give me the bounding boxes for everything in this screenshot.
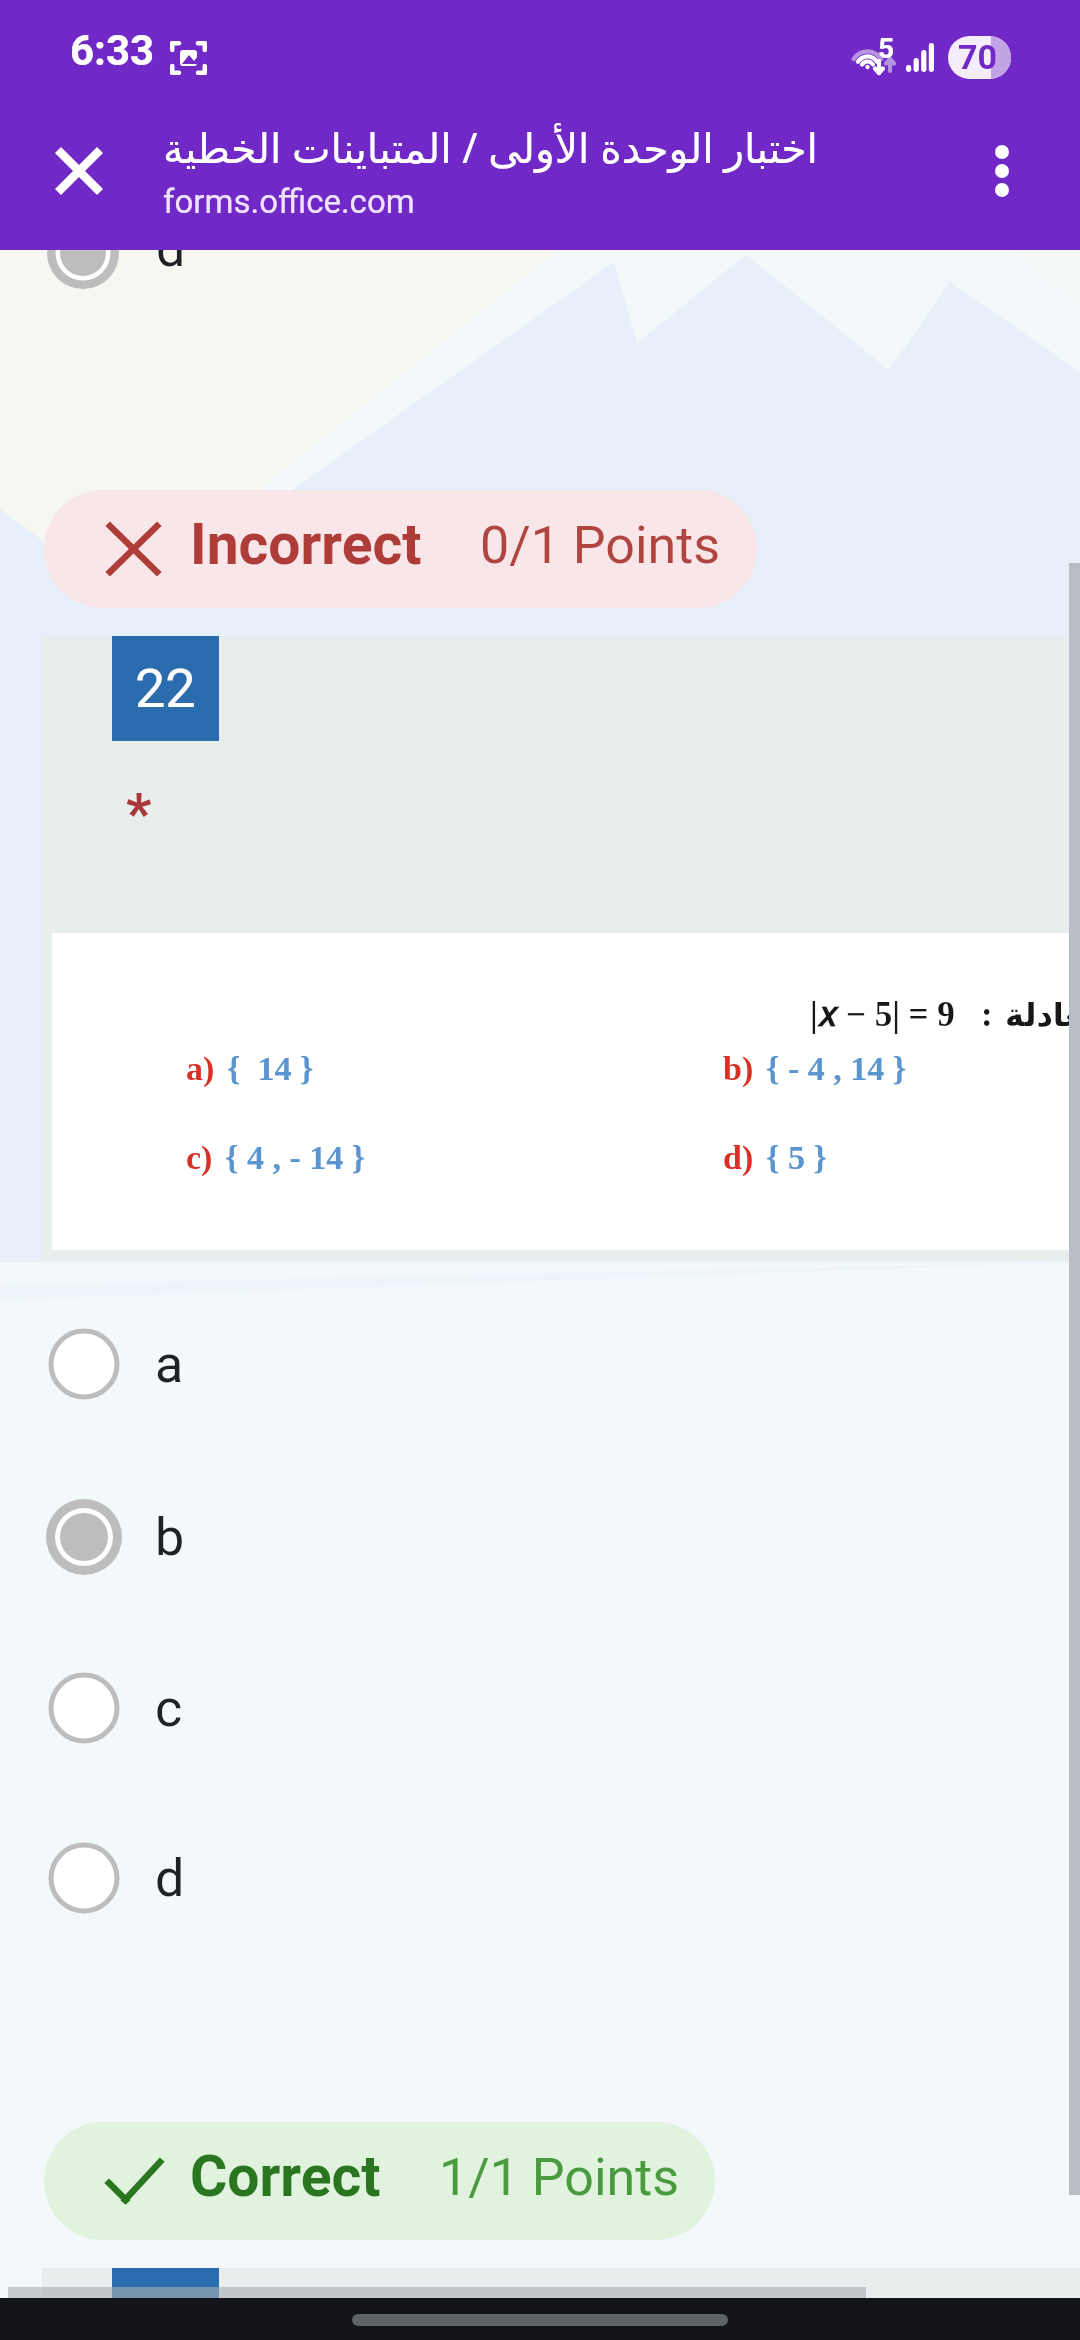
button[interactable]: d <box>0 1818 1080 1938</box>
staticText: { 4 , - 14 } <box>225 1139 366 1177</box>
staticText: { 5 } <box>766 1139 827 1177</box>
staticText: معادلة <box>1005 996 1080 1033</box>
staticText: b) <box>723 1050 754 1088</box>
staticText: b <box>155 1507 185 1568</box>
staticText: 5 <box>878 32 895 65</box>
staticText: 6:33 <box>70 26 155 75</box>
staticText: اختبار الوحدة الأولى / المتباينات الخطية <box>163 119 819 175</box>
staticText: a) <box>186 1050 215 1088</box>
staticText: a <box>155 1334 184 1395</box>
button[interactable]: Incorrect <box>44 490 757 608</box>
staticText: c) <box>186 1139 213 1177</box>
staticText: forms.office.com <box>163 182 415 221</box>
staticText: d <box>156 218 186 279</box>
staticText: d <box>155 1848 185 1909</box>
button[interactable]: c <box>0 1648 1080 1768</box>
staticText: |𝑥 − 5| = 9 <box>810 995 955 1034</box>
staticText: { - 4 , 14 } <box>766 1050 907 1088</box>
staticText: Correct <box>190 2143 381 2210</box>
staticText: 70 <box>958 37 998 77</box>
staticText: { 14 } <box>227 1050 314 1088</box>
staticText: 1/1 Points <box>439 2147 680 2208</box>
staticText: * <box>126 781 152 847</box>
staticText: Incorrect <box>190 511 422 578</box>
staticText: : <box>981 995 993 1034</box>
staticText: c <box>155 1678 183 1739</box>
staticText: d) <box>723 1139 754 1177</box>
button[interactable]: Correct <box>44 2122 715 2240</box>
button[interactable]: b <box>0 1477 1080 1597</box>
staticText: 22 <box>135 657 196 720</box>
button[interactable]: a <box>0 1304 1080 1424</box>
button[interactable]: More options <box>953 122 1051 220</box>
button[interactable]: Close <box>30 122 128 220</box>
staticText: 0/1 Points <box>480 515 721 576</box>
